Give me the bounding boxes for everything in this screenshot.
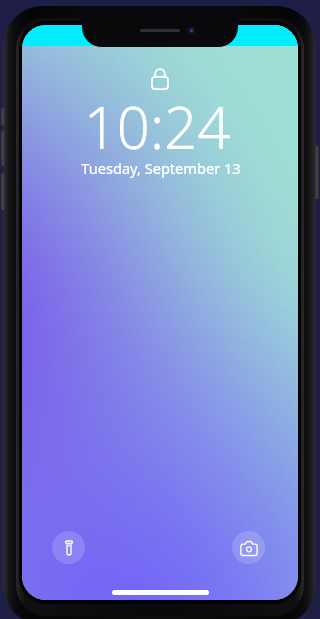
button[interactable]: Camera <box>232 531 265 564</box>
button[interactable]: Flashlight <box>52 531 85 564</box>
staticText: Tuesday, September 13 <box>23 158 298 178</box>
staticText: 10:24 <box>22 87 295 166</box>
